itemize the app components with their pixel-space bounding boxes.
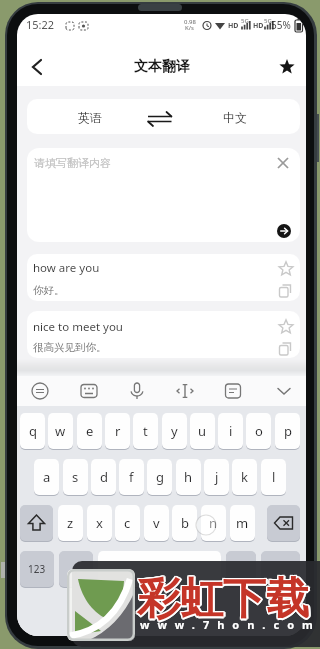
staticText: 5G (264, 17, 272, 25)
button[interactable] (267, 505, 300, 541)
staticText: g (156, 468, 164, 486)
staticText: nice to meet you (33, 319, 123, 335)
button[interactable]: x (87, 505, 112, 541)
staticText: d (100, 468, 108, 486)
staticText: h (184, 468, 193, 486)
button[interactable] (145, 110, 175, 136)
button[interactable]: d (91, 459, 116, 495)
staticText: e (86, 422, 94, 440)
staticText: www.7hon.com (140, 617, 320, 632)
button[interactable]: l (261, 459, 286, 495)
staticText: l (272, 468, 276, 486)
staticText: t (143, 422, 148, 440)
staticText: a (43, 468, 51, 486)
staticText: 彩虹下载 (136, 573, 308, 627)
staticText: b (181, 514, 189, 532)
staticText: 彩虹下载 (137, 574, 309, 628)
button[interactable]: g (147, 459, 172, 495)
staticText: 彩虹下载 (137, 572, 309, 626)
button[interactable]: h (176, 459, 201, 495)
button[interactable] (274, 279, 296, 301)
staticText: q (29, 422, 37, 440)
staticText: 15:22 (26, 17, 55, 32)
staticText: k (241, 468, 248, 486)
staticText: 彩虹下载 (138, 571, 310, 625)
button[interactable] (261, 551, 300, 587)
button[interactable] (23, 53, 51, 81)
button[interactable]: c (115, 505, 140, 541)
staticText: m (236, 514, 249, 532)
staticText: 很高兴见到你。 (33, 341, 107, 354)
staticText: 英语 (78, 110, 102, 125)
button[interactable]: v (144, 505, 169, 541)
button[interactable] (222, 380, 244, 402)
staticText: r (115, 422, 121, 440)
button[interactable] (277, 224, 291, 238)
staticText: 请填写翻译内容 (34, 156, 111, 170)
staticText: 彩虹下载 (136, 571, 308, 625)
staticText: j (215, 468, 219, 486)
button[interactable]: p (275, 413, 300, 449)
staticText: how are you (33, 260, 100, 276)
staticText: 0.98 (184, 18, 196, 26)
staticText: f (129, 468, 134, 486)
staticText: n (209, 514, 218, 532)
staticText: 彩虹下载 (136, 572, 308, 626)
staticText: 中文 (223, 110, 247, 125)
button[interactable] (174, 380, 196, 402)
button[interactable] (274, 337, 296, 359)
button[interactable] (78, 380, 100, 402)
button[interactable] (27, 254, 300, 301)
staticText: 你好。 (33, 284, 65, 297)
button[interactable]: s (63, 459, 88, 495)
button[interactable] (59, 551, 93, 587)
button[interactable]: z (58, 505, 83, 541)
staticText: HD (228, 21, 239, 31)
staticText: c (124, 514, 131, 532)
staticText: o (255, 422, 263, 440)
button[interactable] (226, 551, 256, 587)
button[interactable] (126, 380, 148, 402)
staticText: i (229, 422, 233, 440)
button[interactable]: a (34, 459, 59, 495)
staticText: HD (253, 21, 264, 31)
button[interactable]: b (172, 505, 197, 541)
button[interactable] (27, 311, 300, 358)
button[interactable]: 中文 (200, 102, 270, 132)
button[interactable]: n (201, 505, 226, 541)
button[interactable]: y (162, 413, 187, 449)
button[interactable]: f (119, 459, 144, 495)
button[interactable]: j (204, 459, 229, 495)
button[interactable]: k (232, 459, 257, 495)
button[interactable]: r (105, 413, 130, 449)
staticText: 123 (28, 562, 46, 576)
button[interactable] (98, 551, 221, 587)
button[interactable] (275, 258, 297, 280)
staticText: y (171, 422, 178, 440)
staticText: w (55, 422, 66, 440)
button[interactable]: i (218, 413, 243, 449)
button[interactable] (275, 316, 297, 338)
staticText: x (96, 514, 103, 532)
staticText: z (67, 514, 74, 532)
button[interactable]: u (190, 413, 215, 449)
button[interactable]: q (20, 413, 45, 449)
button[interactable] (273, 380, 295, 402)
button[interactable] (29, 380, 51, 402)
staticText: u (198, 422, 207, 440)
button[interactable]: e (77, 413, 102, 449)
staticText: 彩虹下载 (137, 571, 309, 625)
staticText: p (284, 422, 292, 440)
button[interactable] (273, 53, 301, 81)
button[interactable]: m (230, 505, 255, 541)
button[interactable]: w (48, 413, 73, 449)
staticText: v (153, 514, 160, 532)
button[interactable]: 123 (20, 551, 54, 587)
staticText: 55% (271, 18, 291, 32)
button[interactable] (20, 505, 53, 541)
button[interactable]: t (133, 413, 158, 449)
button[interactable]: 文本翻译 (134, 58, 190, 76)
button[interactable]: o (246, 413, 271, 449)
button[interactable] (273, 153, 293, 173)
button[interactable]: 英语 (55, 102, 125, 132)
